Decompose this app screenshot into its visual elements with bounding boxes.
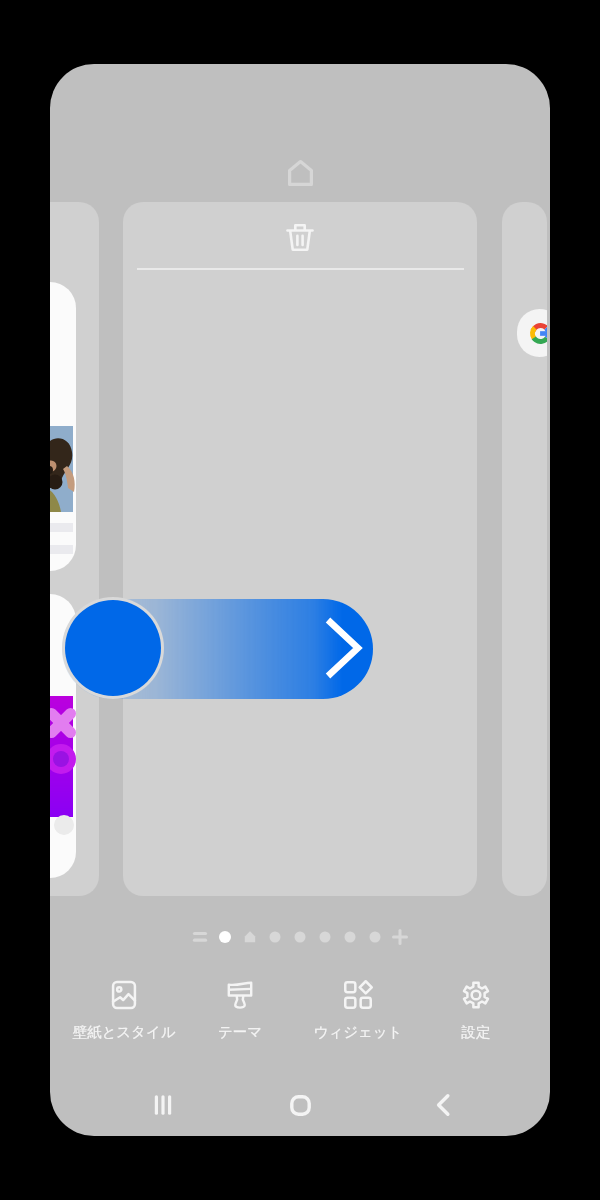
button[interactable]: Search: [517, 309, 547, 357]
button[interactable]: Back: [413, 1080, 473, 1130]
button[interactable]: Swipe to next page: [62, 599, 373, 699]
button[interactable]: Remove page: [123, 202, 477, 896]
button[interactable]: Home: [270, 1080, 330, 1130]
button[interactable]: テーマ: [182, 972, 298, 1044]
button[interactable]: Home page: [288, 160, 313, 186]
button[interactable]: Recents: [133, 1080, 193, 1130]
button[interactable]: 壁紙とスタイル: [66, 972, 182, 1044]
staticText: 設定: [418, 1023, 534, 1041]
button[interactable]: Remove page: [287, 223, 313, 252]
button[interactable]: ウィジェット: [300, 972, 416, 1044]
button[interactable]: Next page: [62, 597, 164, 699]
staticText: ウィジェット: [300, 1023, 416, 1041]
other: Page indicators: [185, 925, 415, 949]
staticText: 壁紙とスタイル: [66, 1023, 182, 1041]
staticText: テーマ: [182, 1023, 298, 1041]
button[interactable]: 設定: [418, 972, 534, 1044]
